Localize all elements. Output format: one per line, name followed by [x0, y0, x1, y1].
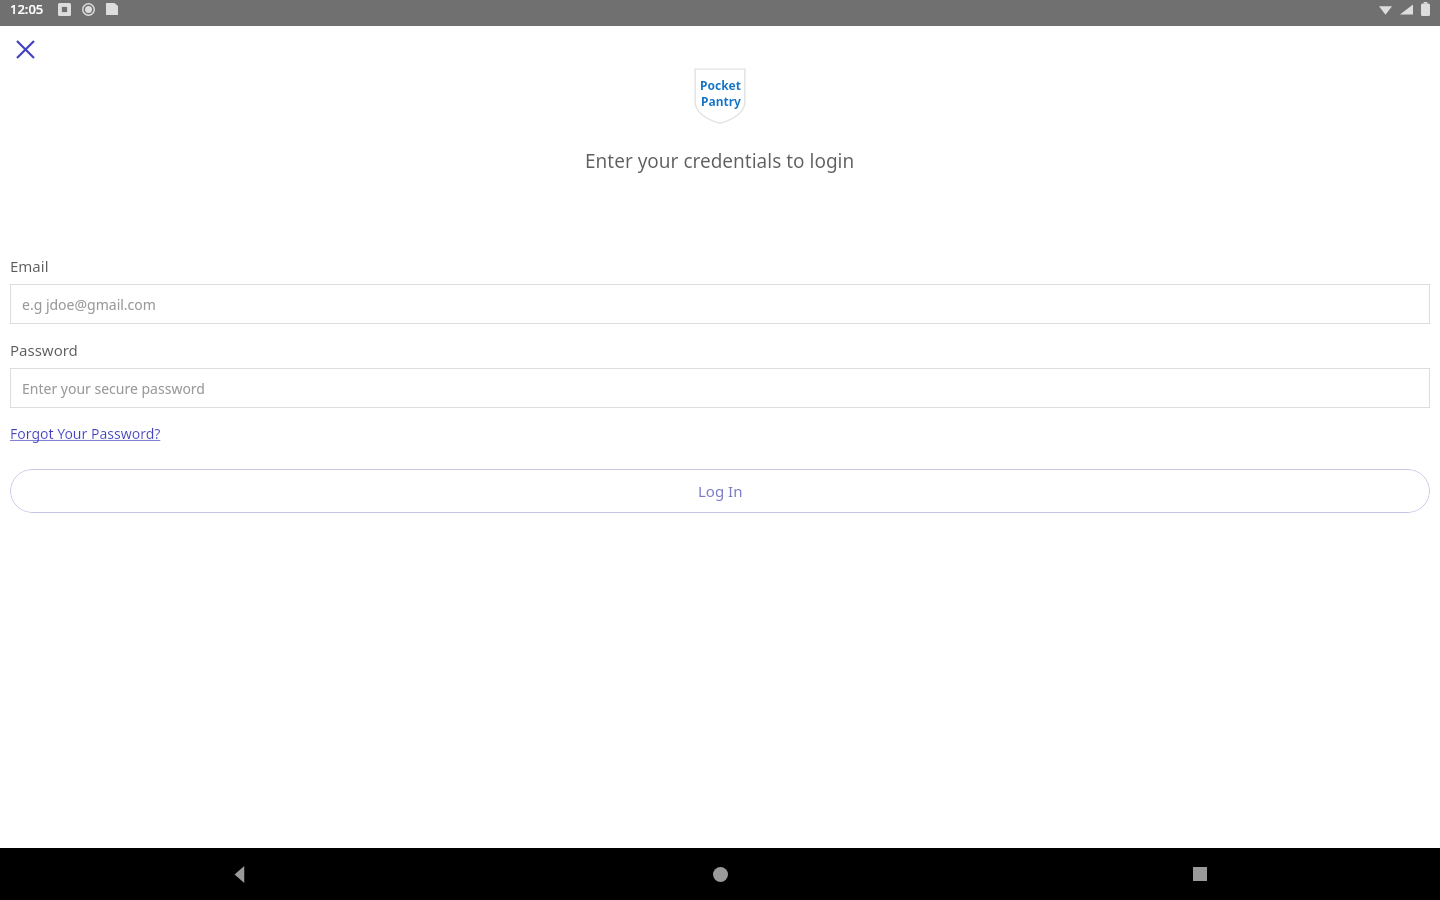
- staticText: Forgot Your Password?: [10, 424, 161, 443]
- staticText: Enter your credentials to login: [585, 148, 855, 174]
- button[interactable]: Enter your secure password: [10, 368, 1430, 408]
- button[interactable]: Back: [0, 848, 480, 900]
- staticText: Email: [10, 256, 49, 276]
- button[interactable]: Close: [8, 32, 42, 66]
- staticText: e.g jdoe@gmail.com: [22, 295, 156, 314]
- staticText: Pocket: [700, 77, 741, 93]
- button[interactable]: Log In: [10, 469, 1430, 513]
- staticText: Pantry: [701, 93, 741, 109]
- button[interactable]: Forgot Your Password?: [10, 424, 161, 443]
- staticText: Password: [10, 340, 78, 360]
- staticText: 12:05: [10, 0, 44, 18]
- button[interactable]: e.g jdoe@gmail.com: [10, 284, 1430, 324]
- staticText: Enter your secure password: [22, 379, 205, 398]
- staticText: Log In: [698, 481, 743, 501]
- button[interactable]: Home: [480, 848, 960, 900]
- button[interactable]: Recent apps: [960, 848, 1440, 900]
